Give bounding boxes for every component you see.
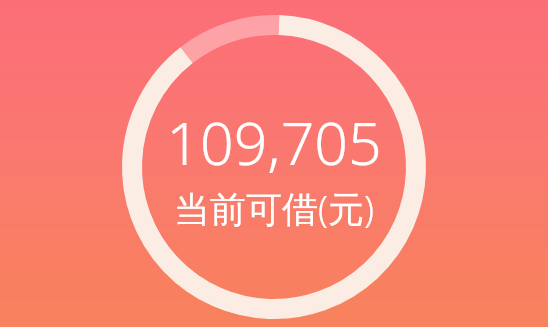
button[interactable]: 当前可借额度 109,705 元 <box>122 15 426 319</box>
staticText: 109,705 <box>166 102 382 182</box>
staticText: 当前可借(元) <box>174 184 374 233</box>
